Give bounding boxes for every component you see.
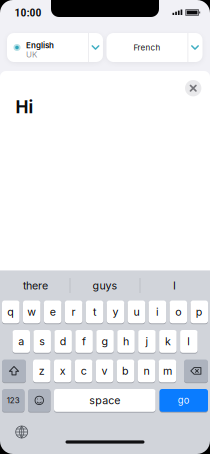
staticText: d <box>60 335 67 348</box>
button[interactable]: I <box>141 271 207 299</box>
button[interactable]: n <box>138 359 155 383</box>
button[interactable]: Clear text <box>185 80 201 96</box>
staticText: k <box>165 335 171 348</box>
button[interactable]: o <box>170 300 187 324</box>
button[interactable]: Next keyboard <box>11 421 33 443</box>
staticText: n <box>143 365 149 377</box>
button[interactable]: a <box>12 329 30 353</box>
button[interactable]: q <box>2 300 19 324</box>
button[interactable]: v <box>96 359 113 383</box>
staticText: s <box>39 335 45 348</box>
button[interactable]: b <box>117 359 134 383</box>
staticText: o <box>175 306 181 318</box>
staticText: p <box>196 306 203 318</box>
button[interactable]: t <box>86 300 103 324</box>
button[interactable]: u <box>128 300 145 324</box>
button[interactable]: c <box>75 359 92 383</box>
staticText: g <box>101 335 108 348</box>
staticText: English <box>26 40 54 50</box>
button[interactable]: Delete <box>184 359 208 383</box>
button[interactable]: s <box>33 329 51 353</box>
button[interactable]: go <box>159 388 208 412</box>
button[interactable]: guys <box>72 271 138 299</box>
button[interactable]: r <box>65 300 82 324</box>
staticText: Hi <box>15 97 33 117</box>
button[interactable]: there <box>2 271 68 299</box>
staticText: 10:00 <box>14 6 41 19</box>
staticText: guys <box>92 279 117 292</box>
staticText: v <box>102 365 108 377</box>
button[interactable]: English <box>7 33 103 62</box>
staticText: go <box>178 395 190 406</box>
staticText: b <box>122 365 129 377</box>
staticText: l <box>187 335 190 348</box>
button[interactable]: k <box>159 329 177 353</box>
button[interactable]: j <box>138 329 156 353</box>
button[interactable]: d <box>54 329 72 353</box>
button[interactable]: e <box>44 300 61 324</box>
staticText: f <box>82 335 86 348</box>
staticText: I <box>173 279 176 292</box>
button[interactable]: x <box>54 359 71 383</box>
button[interactable]: z <box>33 359 50 383</box>
staticText: UK <box>26 50 37 59</box>
staticText: u <box>133 306 139 318</box>
staticText: z <box>39 365 45 377</box>
button[interactable]: i <box>149 300 166 324</box>
staticText: i <box>156 306 159 318</box>
staticText: j <box>145 335 148 348</box>
button[interactable]: m <box>159 359 176 383</box>
staticText: c <box>81 365 87 377</box>
staticText: q <box>7 306 14 318</box>
button[interactable]: space <box>54 388 155 412</box>
staticText: w <box>27 306 36 318</box>
button[interactable]: g <box>96 329 114 353</box>
staticText: x <box>60 365 66 377</box>
button[interactable]: Shift <box>2 359 26 383</box>
staticText: r <box>72 306 76 318</box>
staticText: space <box>89 394 120 407</box>
staticText: a <box>18 335 24 348</box>
staticText: h <box>123 335 129 348</box>
staticText: 123 <box>7 396 20 405</box>
staticText: t <box>93 306 96 318</box>
button[interactable]: h <box>117 329 135 353</box>
staticText: y <box>112 306 118 318</box>
button[interactable]: 123 <box>2 388 24 412</box>
staticText: French <box>133 43 160 52</box>
button[interactable]: French <box>106 33 202 62</box>
button[interactable]: w <box>23 300 40 324</box>
button[interactable]: f <box>75 329 93 353</box>
button[interactable]: l <box>180 329 198 353</box>
staticText: m <box>163 365 172 377</box>
button[interactable]: y <box>107 300 124 324</box>
staticText: e <box>50 306 56 318</box>
staticText: there <box>23 279 48 292</box>
button[interactable]: Emoji <box>28 388 50 412</box>
button[interactable]: p <box>190 300 208 324</box>
